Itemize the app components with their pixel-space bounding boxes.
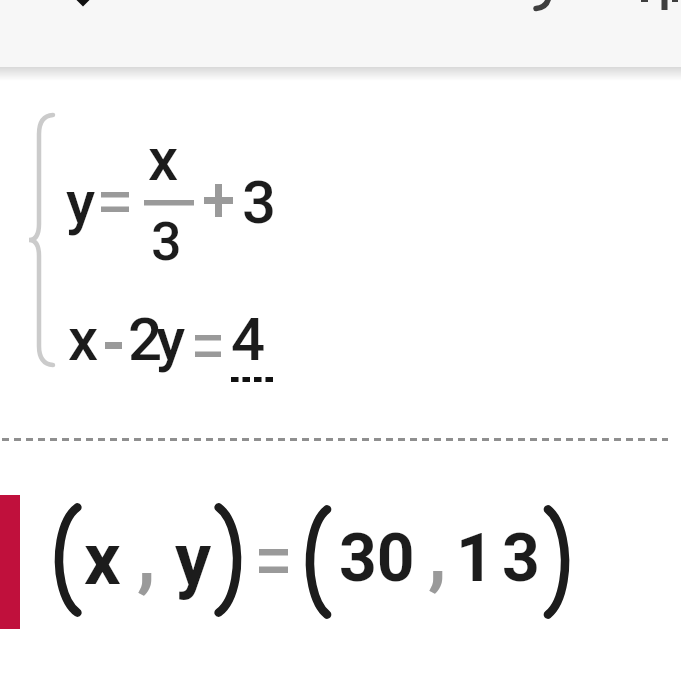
staticText: x [68,304,99,374]
button[interactable] [0,0,681,67]
staticText: 30 [339,520,415,597]
staticText: y [156,304,186,374]
staticText: 3 [242,167,277,237]
staticText: x [84,517,121,601]
staticText: x [148,124,179,194]
staticText: y [175,517,212,601]
staticText: , [137,511,156,600]
staticText: 1 [456,520,494,597]
button[interactable] [0,470,681,645]
staticText: y [66,167,96,237]
staticText: , [428,509,447,598]
staticText: 3 [502,520,540,597]
staticText: 4 [231,304,266,374]
staticText: 3 [151,210,182,273]
staticText: 2 [128,304,163,374]
